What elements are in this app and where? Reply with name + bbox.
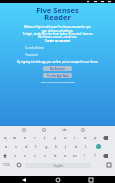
button[interactable]: v — [40, 151, 50, 160]
staticText: x — [24, 153, 27, 158]
button[interactable]: Suggestion — [42, 128, 46, 132]
button[interactable]: q — [0, 133, 10, 142]
button[interactable]: k — [71, 142, 81, 151]
button[interactable]: p — [90, 133, 100, 142]
staticText: u — [64, 135, 67, 140]
staticText: My Account — [50, 67, 66, 71]
button[interactable]: Enter — [91, 142, 105, 151]
button[interactable]: f — [31, 142, 41, 151]
staticText: c — [34, 153, 36, 158]
button[interactable]: s — [11, 142, 21, 151]
staticText: k — [75, 144, 78, 149]
staticText: n — [64, 153, 67, 158]
button[interactable]: m — [70, 151, 80, 160]
button[interactable]: w — [10, 133, 20, 142]
button[interactable]: j — [61, 142, 71, 151]
staticText: ?123 — [3, 163, 10, 167]
button[interactable]: Try the App Now — [43, 73, 72, 78]
button[interactable]: ? — [90, 151, 100, 160]
button[interactable]: y — [50, 133, 60, 142]
button[interactable]: My Account — [43, 66, 72, 71]
staticText: FIND ONE FOR YOUR DEVICES — [41, 80, 75, 83]
button[interactable]: E-mail address — [25, 46, 90, 50]
staticText: b — [54, 153, 57, 158]
button[interactable]: FIND ONE FOR YOUR DEVICES — [41, 80, 75, 83]
button[interactable]: Password — [25, 53, 90, 57]
button[interactable]: r — [30, 133, 40, 142]
staticText: y — [54, 135, 57, 140]
staticText: l — [85, 144, 87, 149]
staticText: w — [13, 135, 17, 140]
button[interactable]: i — [70, 133, 80, 142]
staticText: o — [84, 135, 87, 140]
staticText: i — [74, 135, 76, 140]
staticText: abc — [62, 128, 67, 132]
button[interactable]: Home — [48, 176, 68, 183]
staticText: . — [97, 163, 98, 168]
button[interactable]: Delete — [100, 151, 110, 160]
button[interactable]: h — [51, 142, 61, 151]
button[interactable]: Create an account — [43, 39, 73, 43]
staticText: Create an account — [45, 39, 71, 43]
staticText: v — [44, 153, 47, 158]
staticText: By signing into this app you confirm you… — [0, 60, 115, 64]
button[interactable]: g — [41, 142, 51, 151]
button[interactable]: English — [25, 163, 91, 168]
button[interactable]: Keyboard options — [103, 160, 115, 170]
staticText: h — [55, 144, 58, 149]
staticText: f — [35, 144, 37, 149]
staticText: m — [73, 153, 77, 158]
button[interactable]: ! — [80, 151, 90, 160]
button[interactable]: b — [50, 151, 60, 160]
staticText: a — [5, 144, 8, 149]
staticText: Password — [25, 53, 38, 57]
button[interactable]: c — [30, 151, 40, 160]
staticText: English — [54, 164, 63, 168]
staticText: g — [45, 144, 48, 149]
staticText: s — [15, 144, 17, 149]
button[interactable]: Emoji — [13, 160, 24, 170]
staticText: E-mail address — [25, 46, 45, 50]
staticText: q — [4, 135, 7, 140]
button[interactable]: a — [1, 142, 11, 151]
button[interactable]: z — [10, 151, 20, 160]
button[interactable]: Shift — [0, 151, 10, 160]
button[interactable]: n — [60, 151, 70, 160]
button[interactable]: d — [21, 142, 31, 151]
button[interactable]: x — [20, 151, 30, 160]
button[interactable]: t — [40, 133, 50, 142]
button[interactable]: Suggestion — [22, 128, 26, 132]
staticText: Welcome! Sign in with your Five Senses a… — [0, 25, 115, 38]
staticText: ? — [94, 153, 96, 158]
staticText: ! — [84, 153, 86, 158]
button[interactable]: e — [20, 133, 30, 142]
button[interactable]: Suggestion — [81, 128, 85, 132]
button[interactable]: Backspace — [100, 133, 110, 142]
staticText: r — [34, 135, 36, 140]
staticText: e — [24, 135, 27, 140]
button[interactable]: o — [80, 133, 90, 142]
staticText: z — [14, 153, 16, 158]
button[interactable]: l — [81, 142, 91, 151]
staticText: t — [44, 135, 46, 140]
button[interactable]: Back — [14, 176, 34, 183]
staticText: j — [65, 144, 67, 149]
staticText: Try the App Now — [47, 74, 69, 78]
staticText: Five Senses Reader — [36, 5, 79, 23]
staticText: d — [25, 144, 28, 149]
staticText: p — [94, 135, 97, 140]
button[interactable]: u — [60, 133, 70, 142]
button[interactable]: Recents — [81, 176, 101, 183]
button[interactable]: ?123 — [0, 160, 13, 170]
